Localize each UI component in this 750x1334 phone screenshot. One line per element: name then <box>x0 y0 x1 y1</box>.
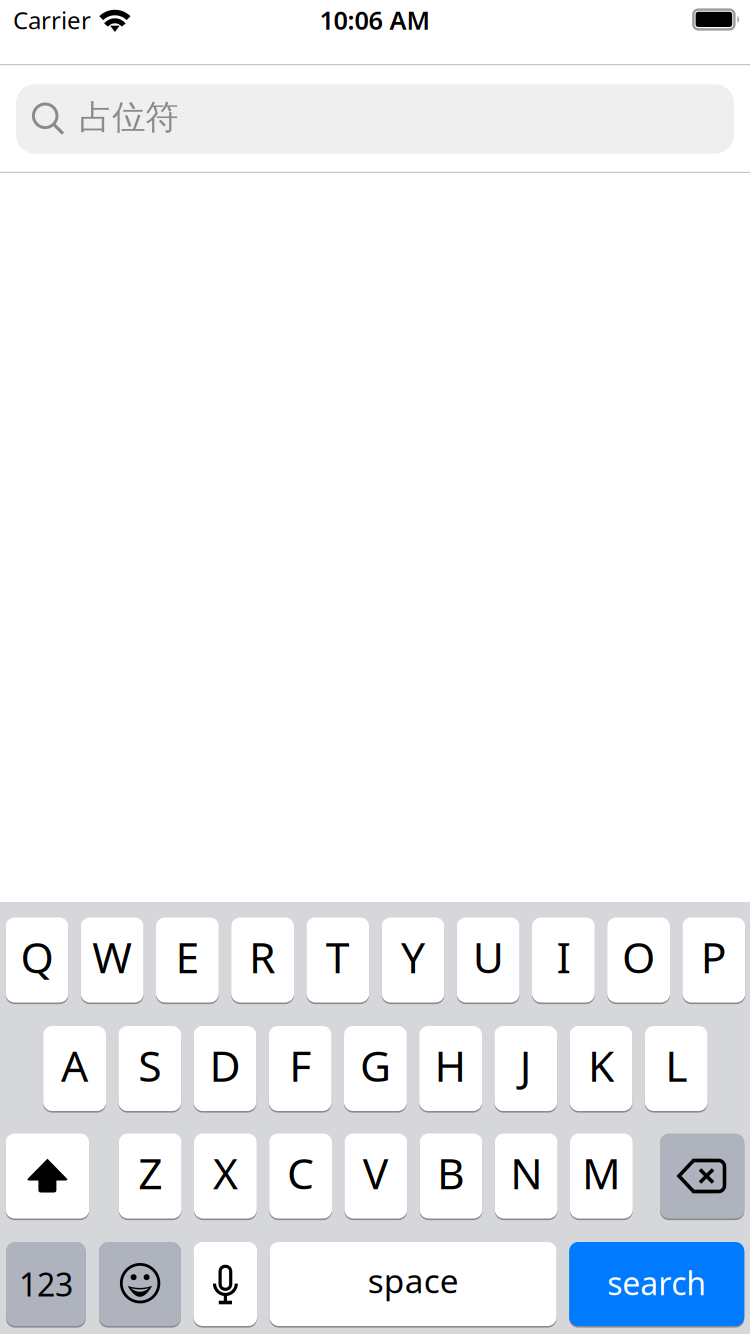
button[interactable]: space <box>270 1242 557 1326</box>
staticText: X <box>213 1144 238 1201</box>
staticText: search <box>607 1262 706 1304</box>
button[interactable]: Q <box>6 917 68 1002</box>
staticText: 123 <box>19 1263 73 1305</box>
staticText: T <box>326 928 350 985</box>
staticText: R <box>249 928 276 985</box>
staticText: K <box>588 1037 614 1094</box>
staticText: 占位符 <box>79 97 178 138</box>
staticText: L <box>665 1037 687 1094</box>
button[interactable]: L <box>645 1026 708 1111</box>
button[interactable]: D <box>194 1026 256 1111</box>
staticText: I <box>556 928 570 985</box>
staticText: N <box>510 1144 542 1201</box>
button[interactable]: N <box>495 1133 558 1218</box>
staticText: Z <box>138 1144 162 1201</box>
staticText: J <box>520 1037 532 1094</box>
button[interactable]: Shift <box>6 1133 89 1218</box>
button[interactable]: Dictation <box>193 1242 257 1326</box>
staticText: Y <box>401 928 425 985</box>
staticText: O <box>622 928 655 985</box>
staticText: F <box>289 1037 311 1094</box>
button[interactable]: F <box>269 1026 332 1111</box>
staticText: S <box>138 1037 161 1094</box>
staticText: Carrier <box>13 4 91 36</box>
button[interactable]: X <box>194 1133 257 1218</box>
button[interactable]: I <box>532 917 595 1002</box>
staticText: B <box>437 1144 465 1201</box>
button[interactable]: V <box>344 1133 407 1218</box>
button[interactable]: P <box>682 917 745 1002</box>
button[interactable]: U <box>457 917 520 1002</box>
button[interactable]: E <box>156 917 219 1002</box>
staticText: C <box>287 1144 314 1201</box>
button[interactable]: Y <box>382 917 444 1002</box>
button[interactable]: A <box>43 1026 106 1111</box>
staticText: G <box>360 1037 391 1094</box>
button[interactable]: C <box>269 1133 332 1218</box>
button[interactable]: Z <box>119 1133 182 1218</box>
button[interactable]: O <box>607 917 670 1002</box>
staticText: P <box>701 928 727 985</box>
staticText: space <box>368 1258 459 1302</box>
staticText: E <box>175 928 199 985</box>
staticText: Q <box>20 928 53 985</box>
button[interactable]: K <box>570 1026 632 1111</box>
staticText: V <box>363 1144 389 1201</box>
button[interactable]: search <box>569 1242 744 1326</box>
button[interactable]: Numbers <box>6 1242 86 1326</box>
button[interactable]: Delete <box>660 1133 744 1218</box>
button[interactable]: B <box>420 1133 482 1218</box>
staticText: W <box>92 928 132 985</box>
staticText: D <box>209 1037 240 1094</box>
staticText: A <box>61 1037 88 1094</box>
button[interactable]: W <box>81 917 144 1002</box>
staticText: H <box>435 1037 467 1094</box>
staticText: 10:06 AM <box>319 3 430 37</box>
staticText: M <box>582 1144 621 1201</box>
button[interactable]: G <box>344 1026 407 1111</box>
button[interactable]: 占位符 <box>16 84 734 154</box>
button[interactable]: M <box>570 1133 633 1218</box>
button[interactable]: J <box>494 1026 557 1111</box>
button[interactable]: R <box>231 917 294 1002</box>
button[interactable]: T <box>306 917 369 1002</box>
button[interactable]: Emoji <box>99 1242 181 1326</box>
button[interactable]: S <box>118 1026 181 1111</box>
button[interactable]: H <box>419 1026 482 1111</box>
staticText: U <box>473 928 504 985</box>
